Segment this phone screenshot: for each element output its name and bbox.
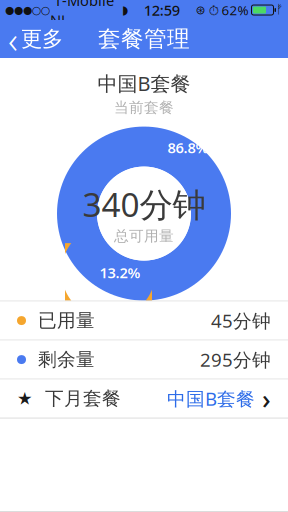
staticText: 13.2% bbox=[99, 263, 140, 282]
staticText: 295分钟 bbox=[200, 347, 271, 372]
staticText: ᚠ bbox=[276, 4, 283, 16]
staticText: ★ bbox=[17, 389, 33, 408]
staticText: ◗ bbox=[122, 3, 128, 17]
staticText: 中国B套餐 bbox=[97, 70, 190, 97]
staticText: T-Mobile NL bbox=[50, 0, 114, 29]
button[interactable]: ★ bbox=[0, 380, 288, 418]
staticText: ⏱ 62% bbox=[205, 1, 251, 19]
staticText: 340分钟 bbox=[82, 182, 205, 226]
staticText: 86.8% bbox=[167, 138, 208, 157]
staticText: 更多 bbox=[21, 26, 63, 52]
staticText: 下月套餐 bbox=[33, 387, 121, 410]
staticText: ‹ bbox=[8, 14, 18, 64]
staticText: 中国B套餐 bbox=[167, 386, 255, 411]
staticText: 总可用量 bbox=[114, 227, 174, 245]
button[interactable]: 已用量 bbox=[0, 302, 288, 340]
staticText: ⊛ bbox=[195, 3, 205, 17]
staticText: 当前套餐 bbox=[114, 99, 174, 117]
staticText: 45分钟 bbox=[211, 308, 271, 333]
staticText: 12:59 bbox=[144, 0, 180, 20]
staticText: 套餐管理 bbox=[98, 25, 190, 53]
staticText: 已用量 bbox=[26, 309, 95, 332]
button[interactable]: 剩余量 bbox=[0, 341, 288, 379]
staticText: 剩余量 bbox=[26, 348, 95, 371]
staticText: › bbox=[255, 381, 271, 416]
staticText: ●●●○○ bbox=[5, 4, 50, 16]
button[interactable]: ‹ bbox=[0, 10, 63, 68]
